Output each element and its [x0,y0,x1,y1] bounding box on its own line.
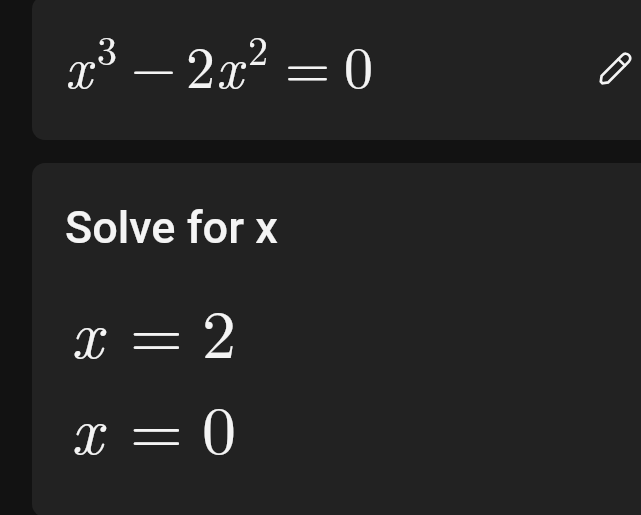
staticText: = [130,281,183,377]
staticText: x [71,377,103,473]
button[interactable]: x [32,0,641,140]
staticText: − [131,22,177,104]
staticText: 2 [186,23,216,105]
staticText: x [71,281,103,377]
staticText: 0 [344,23,374,105]
staticText: 3 [97,20,117,77]
button[interactable]: Edit equation [587,41,641,97]
staticText: 0 [202,377,237,473]
button[interactable]: Solve for x [32,163,641,515]
staticText: 2 [248,20,268,77]
staticText: = [285,23,331,105]
staticText: x [216,23,243,105]
staticText: = [130,377,183,473]
staticText: x [65,23,92,105]
staticText: Solve for x [65,201,278,254]
staticText: 2 [202,281,237,377]
